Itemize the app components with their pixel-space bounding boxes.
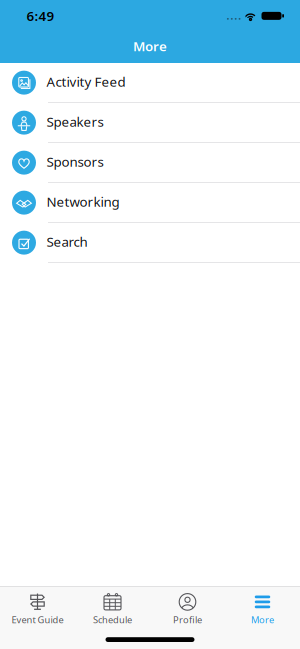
button[interactable]: Activity Feed <box>0 63 300 103</box>
button[interactable]: Profile <box>150 587 225 626</box>
staticText: Profile <box>173 613 202 626</box>
button[interactable]: More <box>225 587 300 626</box>
staticText: 6:49 <box>26 7 54 25</box>
staticText: Schedule <box>93 613 132 626</box>
staticText: Search <box>46 233 87 250</box>
staticText: Sponsors <box>46 153 103 170</box>
button[interactable]: Search <box>0 223 300 263</box>
staticText: Networking <box>46 193 119 210</box>
staticText: Activity Feed <box>46 73 125 90</box>
staticText: More <box>251 613 274 626</box>
staticText: Event Guide <box>11 613 63 626</box>
button[interactable]: Speakers <box>0 103 300 143</box>
button[interactable]: Schedule <box>75 587 150 626</box>
staticText: More <box>133 37 167 55</box>
staticText: Speakers <box>46 113 103 130</box>
button[interactable]: Sponsors <box>0 143 300 183</box>
button[interactable]: Networking <box>0 183 300 223</box>
button[interactable]: Event Guide <box>0 587 75 626</box>
